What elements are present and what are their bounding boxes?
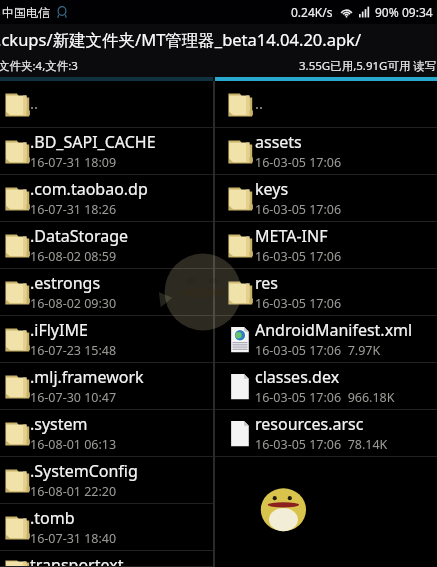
staticText: 16-07-23 15:48 [30,342,117,359]
staticText: resources.arsc [255,413,364,435]
staticText: 16-07-31 18:09 [30,154,117,171]
button[interactable]: .iFlyIME [0,316,213,363]
button[interactable]: .com.taobao.dp [0,175,213,222]
button[interactable]: .mlj.framework [0,363,213,410]
button[interactable]: .. [0,81,213,128]
button[interactable]: META-INF [215,222,437,269]
staticText: 16-07-31 18:26 [30,201,117,218]
staticText: .. [255,93,264,113]
staticText: 16-03-05 17:06 [255,295,342,312]
staticText: 16-08-01 06:13 [30,436,117,453]
staticText: 16-03-05 17:06 [255,201,342,218]
staticText: AndroidManifest.xml [255,319,413,341]
staticText: 16-08-01 22:20 [30,483,117,500]
staticText: 16-03-05 17:06 [255,248,342,265]
staticText: 3.55G已用,5.91G可用 读写 [299,58,437,74]
staticText: 16-03-05 17:06 78.14K [255,436,388,453]
staticText: .BD_SAPI_CACHE [30,131,156,153]
staticText: assets [255,131,302,153]
button[interactable]: res [215,269,437,316]
staticText: 16-03-05 17:06 [255,154,342,171]
staticText: .system [30,413,88,435]
staticText: .tomb [30,507,75,529]
staticText: transportext [30,554,124,567]
button[interactable]: transportext [0,551,213,567]
staticText: classes.dex [255,366,340,388]
button[interactable]: .BD_SAPI_CACHE [0,128,213,175]
staticText: keys [255,178,289,200]
staticText: .. [30,93,39,113]
staticText: 0.24K/s [291,4,333,20]
button[interactable]: .tomb [0,504,213,551]
staticText: META-INF [255,225,328,247]
staticText: res [255,272,278,294]
staticText: 16-07-30 10:47 [30,389,117,406]
staticText: 16-07-31 18:40 [30,530,117,547]
button[interactable]: classes.dex [215,363,437,410]
button[interactable]: keys [215,175,437,222]
button[interactable]: .estrongs [0,269,213,316]
staticText: 中国电信 [2,5,50,20]
staticText: 16-08-02 08:59 [30,248,117,265]
staticText: 16-03-05 17:06 966.18K [255,389,395,406]
staticText: .com.taobao.dp [30,178,148,200]
button[interactable]: .. [215,81,437,128]
staticText: 16-03-05 17:06 7.97K [255,342,381,359]
staticText: .estrongs [30,272,101,294]
staticText: 16-08-02 09:30 [30,295,117,312]
staticText: .iFlyIME [30,319,88,341]
button[interactable]: .system [0,410,213,457]
button[interactable]: .ckups/新建文件夹/MT管理器_beta14.04.20.apk/ [0,24,437,55]
staticText: .SystemConfig [30,460,138,482]
staticText: .mlj.framework [30,366,144,388]
staticText: .ckups/新建文件夹/MT管理器_beta14.04.20.apk/ [0,28,362,51]
staticText: 文件夹:4,文件:3 [0,58,78,74]
button[interactable]: .SystemConfig [0,457,213,504]
button[interactable]: AndroidManifest.xml [215,316,437,363]
button[interactable]: .DataStorage [0,222,213,269]
staticText: .DataStorage [30,225,129,247]
staticText: 09:34 [402,4,433,20]
button[interactable]: resources.arsc [215,410,437,457]
staticText: 90% [375,4,399,20]
button[interactable]: assets [215,128,437,175]
